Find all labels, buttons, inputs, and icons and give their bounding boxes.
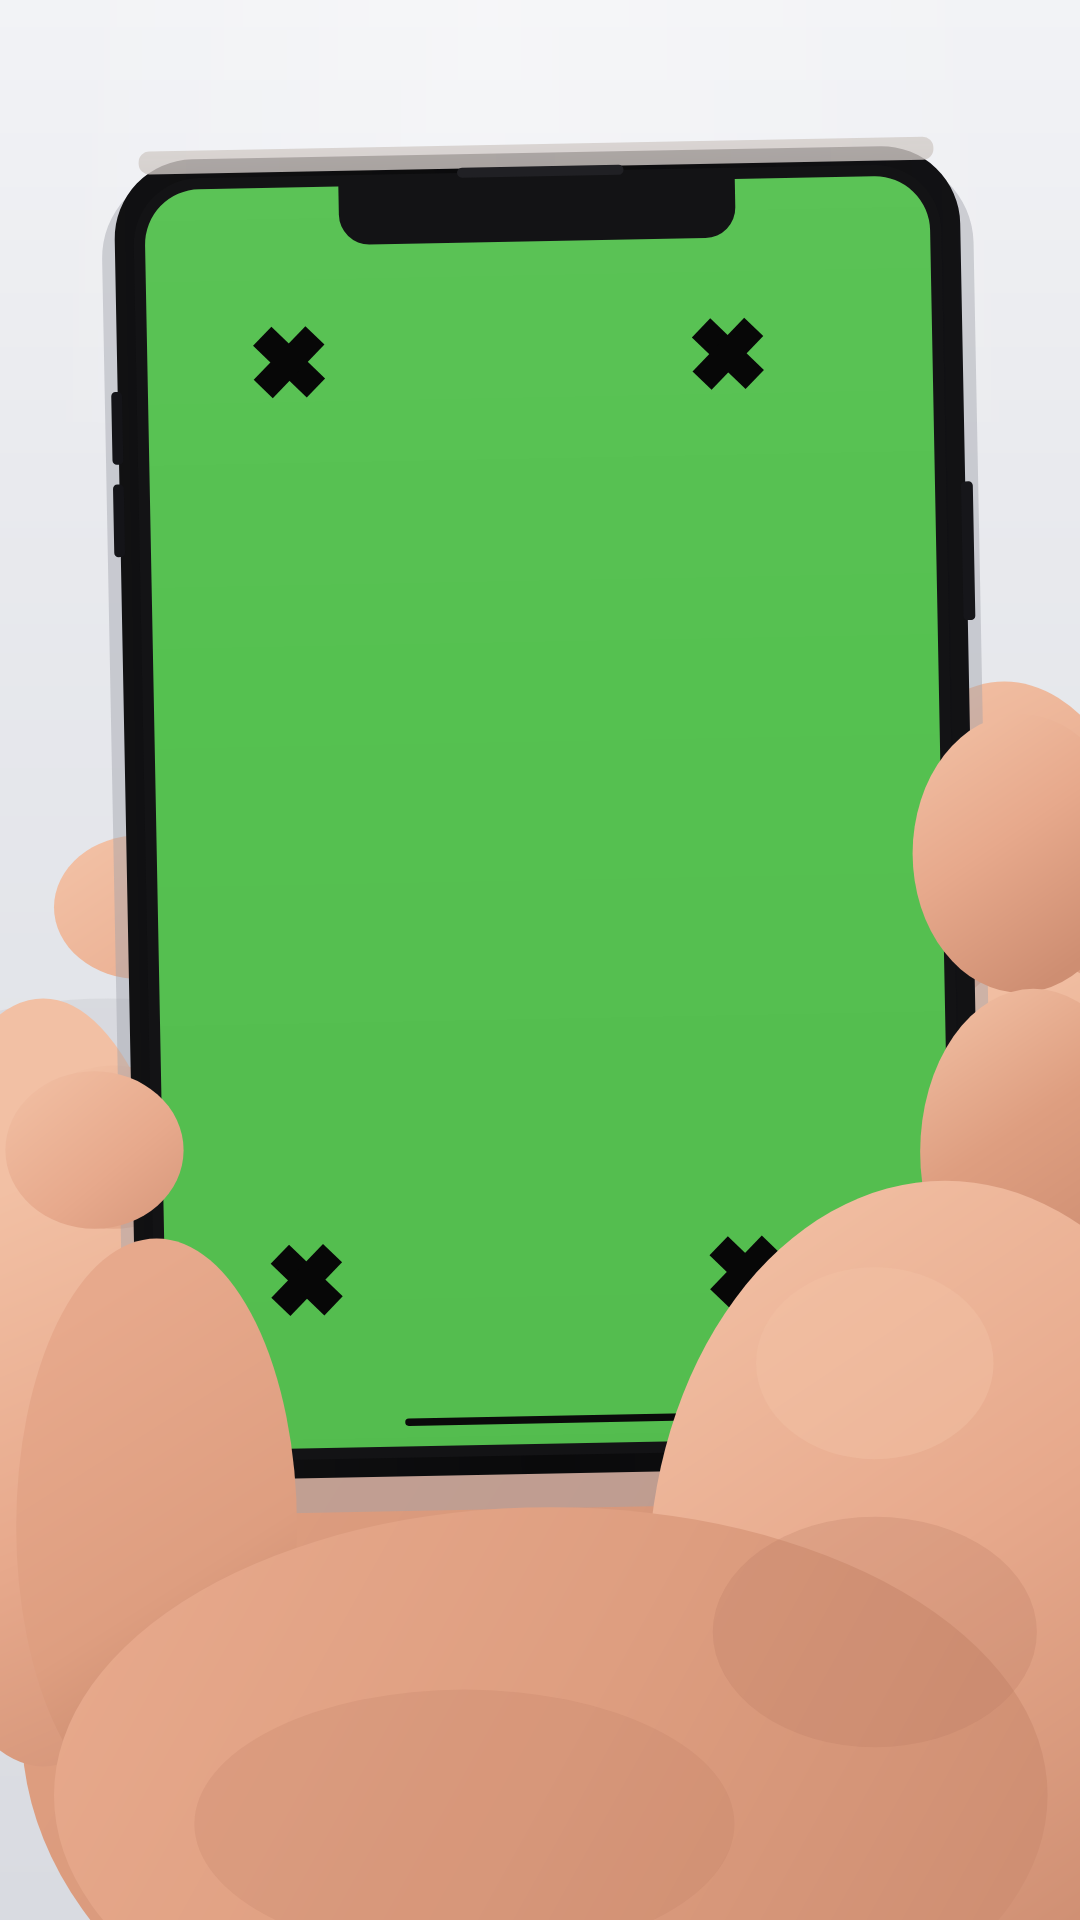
other: Green screen chroma key with tracking ma… [0, 0, 1080, 1920]
button[interactable]: Green screen chroma key with tracking ma… [0, 0, 1080, 1920]
